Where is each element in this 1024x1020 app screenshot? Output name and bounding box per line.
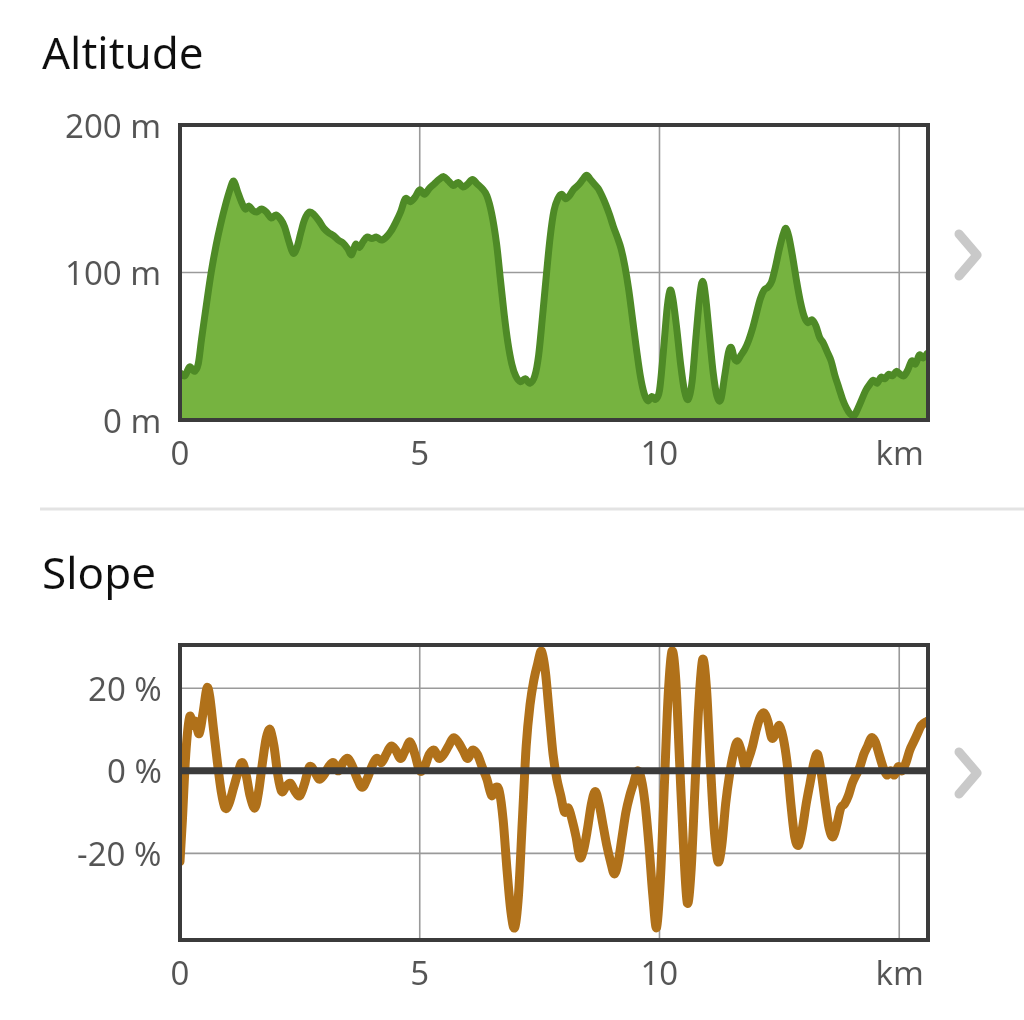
button[interactable]: Slope profile, open details <box>0 511 1024 1020</box>
button[interactable]: Altitude profile, open details <box>0 0 1024 511</box>
